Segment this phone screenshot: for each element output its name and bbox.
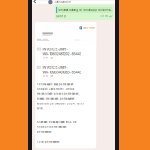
staticText: sebelum 28 Oktober 2024, 16:51 (37, 102, 84, 105)
staticText: INVOICE-JMH- (42, 65, 68, 70)
button[interactable]: Jatis Mobile (48, 0, 71, 4)
staticText: melanjutkan proses pemesanan, (37, 92, 80, 95)
staticText: pembayaran (37, 130, 52, 133)
staticText: Jatis Mobile (54, 0, 71, 4)
staticText: 10:49 · pdf (42, 75, 53, 77)
staticText: 4:41 PM (100, 15, 108, 18)
staticText: Total pembayaran (37, 140, 60, 143)
staticText: Anda untuk melakukan (37, 125, 67, 128)
staticText: 10:49 · pdf (42, 57, 53, 59)
staticText: silakan melakukan pembayaran (37, 97, 75, 100)
staticText: Terima kasih atas pemesanan (37, 83, 74, 86)
staticText: Silahkan buka aplikasi BCA Va (37, 120, 76, 124)
staticText: INVOICE-JMH- (42, 47, 68, 51)
staticText: WA-10832481202-85443 (42, 52, 81, 56)
staticText: Anda di Jatis Hotel. Untuk (37, 87, 74, 91)
staticText: Jatis Hotel (83, 26, 95, 29)
button[interactable]: Back (33, 1, 39, 4)
staticText: Selamat Datang di WhatsApp Business... (58, 8, 112, 11)
staticText: Sent D (56, 15, 66, 18)
staticText: WIB. (37, 107, 44, 110)
staticText: WA-10903401083-85443 (42, 70, 81, 74)
